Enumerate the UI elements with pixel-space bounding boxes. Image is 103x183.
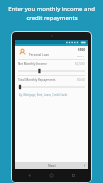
button[interactable]: Net Monthly Income xyxy=(15,60,88,75)
button[interactable]: Back xyxy=(25,171,34,180)
staticText: Step 1 xyxy=(77,54,85,57)
staticText: $0.00 xyxy=(77,78,85,82)
button[interactable]: Total Monthly Repayments xyxy=(15,76,88,91)
staticText: credit repayments xyxy=(26,14,78,22)
staticText: $500 xyxy=(78,48,85,52)
button[interactable]: Recents xyxy=(69,171,78,180)
button[interactable]: Home xyxy=(47,171,56,180)
staticText: Net Monthly Income xyxy=(18,62,75,66)
staticText: Eg. Mortgage, Rent, Loans, Credit Cards xyxy=(19,93,68,97)
staticText: $2,500 xyxy=(75,62,85,66)
staticText: Personal Loan xyxy=(29,53,50,57)
staticText: Next xyxy=(48,163,56,168)
staticText: Total Monthly Repayments xyxy=(18,78,77,82)
button[interactable]: Next xyxy=(15,162,88,169)
staticText: Enter you monthly income and xyxy=(8,5,95,13)
